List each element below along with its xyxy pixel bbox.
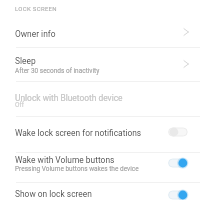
button[interactable] (0, 152, 200, 181)
button[interactable]: Sleep (180, 57, 194, 71)
staticText: After 30 seconds of inactivity (15, 67, 100, 75)
button[interactable]: Show on lock screen (164, 186, 192, 200)
staticText: Sleep (15, 56, 36, 66)
staticText: Show on lock screen (15, 189, 92, 199)
staticText: Pressing Volume buttons wakes the device (15, 165, 139, 173)
staticText: Off (15, 101, 24, 109)
staticText: Wake lock screen for notifications (15, 128, 142, 138)
staticText: LOCK SCREEN (15, 5, 57, 12)
staticText: Unlock with Bluetooth device (15, 93, 123, 103)
button[interactable] (0, 116, 200, 152)
button[interactable] (0, 81, 200, 116)
button[interactable]: Wake lock screen for notifications (164, 123, 192, 141)
button[interactable]: Owner info (180, 25, 194, 39)
staticText: Owner info (15, 29, 56, 39)
button[interactable] (0, 181, 200, 200)
staticText: Wake with Volume buttons (15, 155, 115, 165)
button[interactable]: Wake with Volume buttons (164, 154, 192, 172)
button[interactable] (0, 47, 200, 81)
button[interactable] (0, 20, 200, 47)
